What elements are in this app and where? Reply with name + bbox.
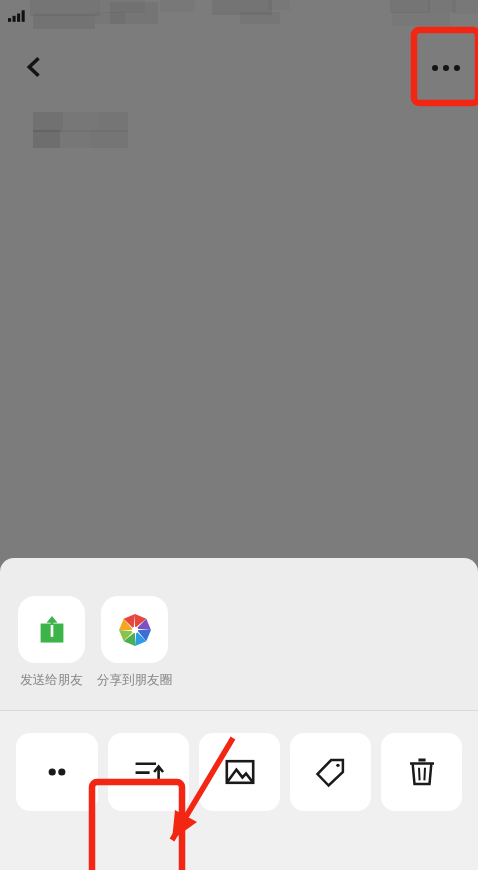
- staticText: 分享到朋友圈: [97, 672, 172, 688]
- button[interactable]: Image: [199, 733, 280, 811]
- button[interactable]: Back: [12, 44, 58, 90]
- button[interactable]: 分享到朋友圈: [97, 596, 172, 688]
- button[interactable]: Delete: [381, 733, 462, 811]
- button[interactable]: More: [16, 733, 98, 811]
- button[interactable]: 发送给朋友: [18, 596, 85, 688]
- button[interactable]: Sort: [108, 733, 189, 811]
- button[interactable]: Tag: [290, 733, 371, 811]
- button[interactable]: More options: [420, 42, 472, 94]
- staticText: 发送给朋友: [20, 672, 83, 688]
